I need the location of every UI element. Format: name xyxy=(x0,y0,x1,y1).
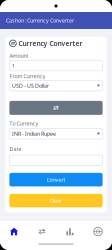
button[interactable] xyxy=(9,155,103,165)
staticText: 1 xyxy=(12,62,15,69)
staticText: To Currency xyxy=(9,120,38,127)
staticText: Currency Converter xyxy=(19,39,83,48)
staticText: Cashon : Currency Converter xyxy=(6,17,74,24)
button[interactable]: Countries xyxy=(84,221,112,242)
button[interactable]: Home xyxy=(0,221,28,242)
staticText: From Currency xyxy=(9,73,45,80)
button[interactable]: INR - Indian Rupee xyxy=(9,128,103,139)
button[interactable]: USD - US Dollar xyxy=(9,80,103,91)
button[interactable]: Swap currencies xyxy=(9,101,103,115)
button[interactable]: Convert xyxy=(9,173,103,186)
button[interactable]: Convert xyxy=(28,221,56,242)
button[interactable]: Clear xyxy=(9,194,103,207)
staticText: Convert xyxy=(46,176,65,183)
staticText: Amount xyxy=(9,52,28,59)
staticText: USD - US Dollar xyxy=(12,82,49,89)
staticText: Clear xyxy=(50,197,62,204)
button[interactable]: 1 xyxy=(9,60,103,71)
button[interactable]: Rates xyxy=(56,221,84,242)
staticText: INR - Indian Rupee xyxy=(12,130,56,137)
staticText: Date xyxy=(9,145,21,152)
